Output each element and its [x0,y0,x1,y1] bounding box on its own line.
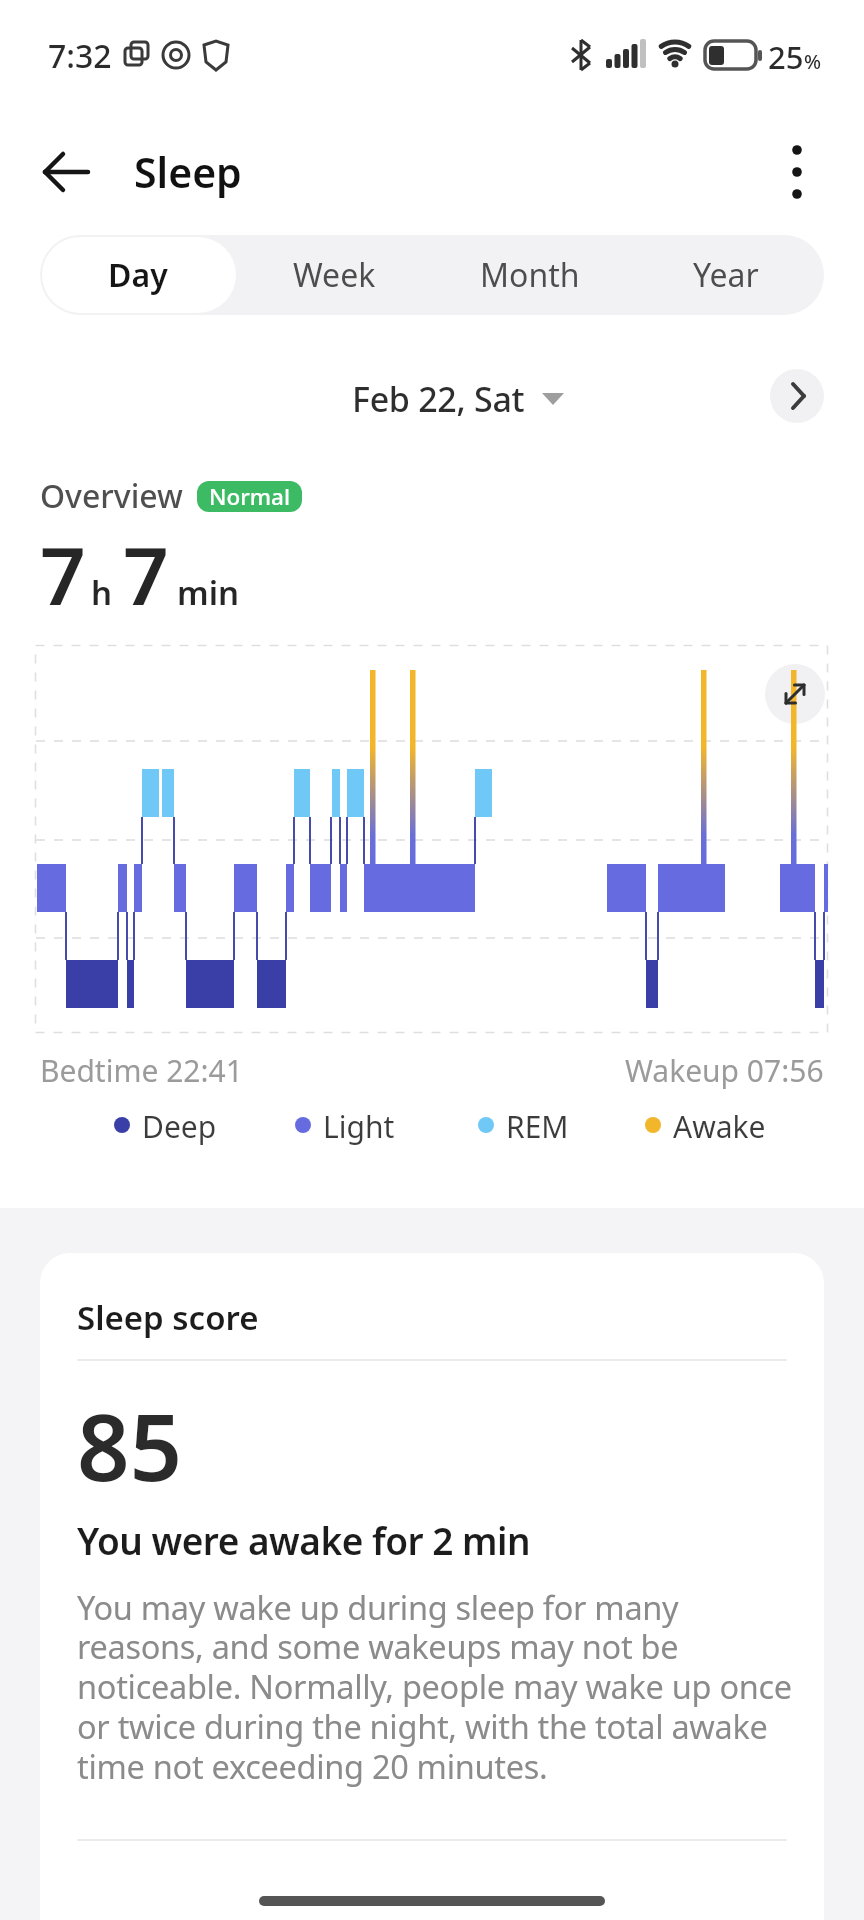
staticText: Sleep [134,144,242,200]
staticText: You may wake up during sleep for many re… [77,1585,792,1789]
staticText: Awake [673,1106,766,1147]
button[interactable] [770,142,826,202]
button[interactable]: Day [40,235,236,315]
staticText: Day [108,253,168,297]
staticText: min [177,570,240,615]
staticText: Overview [40,474,183,518]
staticText: % [804,48,822,75]
button[interactable]: Sleep score [40,1253,824,1920]
staticText: Deep [142,1106,217,1147]
staticText: 25 [768,36,804,78]
staticText: 7 [40,519,86,628]
staticText: Feb 22, Sat [352,376,525,422]
button[interactable]: Week [236,235,432,315]
staticText: 85 [77,1383,183,1508]
staticText: Normal [209,481,290,512]
button[interactable] [30,142,94,202]
button[interactable] [770,369,824,423]
staticText: Month [480,253,580,297]
staticText: Wakeup 07:56 [625,1050,824,1091]
staticText: REM [506,1106,569,1147]
staticText: h [91,570,113,615]
button[interactable] [765,664,825,724]
staticText: Year [693,253,759,297]
staticText: Bedtime 22:41 [40,1050,243,1091]
staticText: Week [293,253,376,297]
button[interactable]: Year [628,235,824,315]
staticText: Light [323,1106,395,1147]
staticText: Sleep score [77,1295,259,1340]
staticText: 7:32 [48,34,112,78]
button[interactable]: Month [432,235,628,315]
button[interactable]: Feb 22, Sat [352,376,564,422]
staticText: 7 [123,519,169,628]
staticText: You were awake for 2 min [77,1515,531,1565]
